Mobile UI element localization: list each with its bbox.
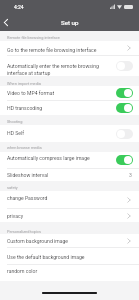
staticText: privacy — [7, 213, 124, 219]
staticText: change Password — [7, 195, 124, 201]
staticText: HD Self — [7, 130, 116, 136]
button[interactable]: Toggle on — [116, 103, 133, 113]
button[interactable]: Back — [0, 12, 12, 31]
staticText: Automatically enter the remote browsing … — [7, 63, 116, 76]
button[interactable]: Toggle off — [116, 61, 133, 71]
button[interactable]: Toggle off — [116, 129, 133, 139]
button[interactable]: Custom background image — [0, 234, 139, 247]
button[interactable]: Toggle on — [116, 155, 133, 165]
staticText: Custom background image — [7, 238, 124, 244]
staticText: 3 — [129, 172, 132, 178]
button[interactable]: Go to the remote file browsing interface — [0, 41, 139, 55]
staticText: Video to MP4 format — [7, 90, 116, 96]
button[interactable]: Toggle on — [116, 88, 133, 98]
button[interactable]: change Password — [0, 191, 139, 208]
staticText: Remote file browsing interface — [7, 35, 60, 40]
staticText: random color — [7, 268, 133, 274]
button[interactable]: Automatically enter the remote browsing … — [0, 56, 139, 76]
button[interactable]: HD transcoding — [0, 101, 139, 115]
staticText: safety — [7, 185, 18, 190]
staticText: Set up — [61, 19, 79, 26]
staticText: HD transcoding — [7, 105, 116, 111]
button[interactable]: Video to MP4 format — [0, 86, 139, 100]
staticText: 4:24 — [14, 4, 24, 10]
staticText: Go to the remote file browsing interface — [7, 47, 124, 53]
button[interactable]: Automatically compress large image — [0, 152, 139, 168]
button[interactable]: privacy — [0, 209, 139, 222]
button[interactable]: random color — [0, 265, 139, 281]
staticText: Automatically compress large image — [7, 155, 116, 161]
button[interactable]: HD Self — [0, 125, 139, 142]
staticText: When import media — [7, 81, 41, 86]
staticText: Slideshow interval — [7, 172, 129, 178]
button[interactable]: Use the default background image — [0, 248, 139, 264]
button[interactable]: Slideshow interval — [0, 169, 139, 181]
staticText: Personalized topics — [7, 229, 41, 234]
staticText: Use the default background image — [7, 254, 133, 260]
staticText: Shooting — [7, 119, 23, 124]
staticText: when browse media — [7, 145, 42, 150]
